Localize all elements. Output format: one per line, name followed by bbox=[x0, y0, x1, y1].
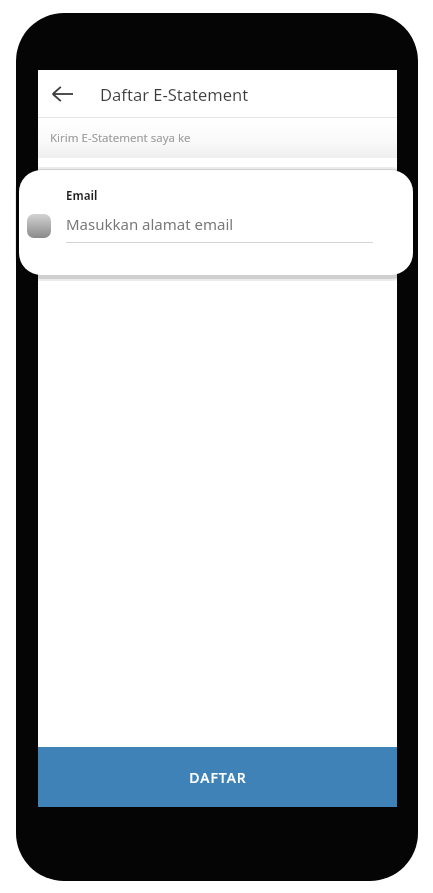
staticText: DAFTAR bbox=[189, 768, 247, 787]
staticText: Email bbox=[66, 188, 98, 204]
button[interactable]: Back bbox=[38, 70, 86, 117]
staticText: Daftar E-Statement bbox=[100, 83, 249, 105]
button[interactable]: Select email bbox=[27, 214, 51, 238]
button[interactable]: Masukkan alamat email bbox=[66, 212, 373, 236]
staticText: Masukkan alamat email bbox=[66, 214, 234, 234]
staticText: Kirim E-Statement saya ke bbox=[50, 130, 191, 146]
button[interactable]: DAFTAR bbox=[38, 747, 397, 807]
